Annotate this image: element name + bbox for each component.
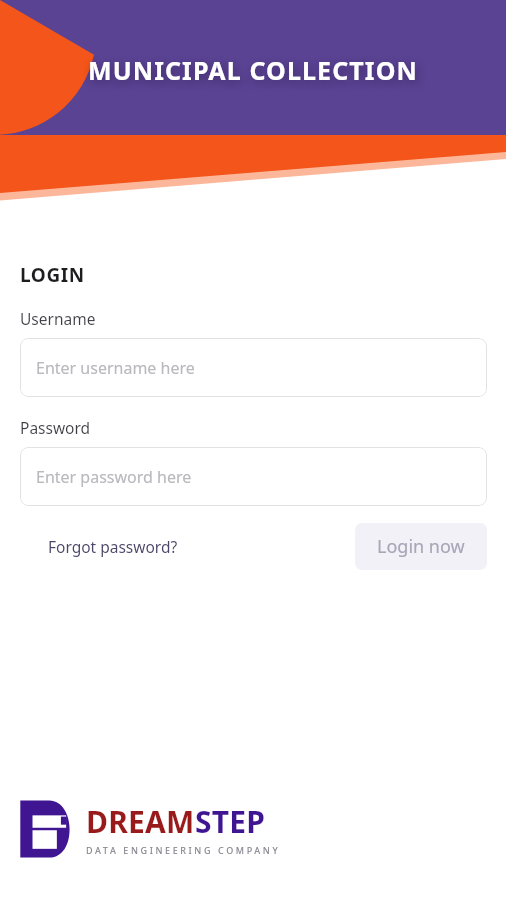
staticText: Enter password here (36, 466, 192, 488)
staticText: Password (20, 417, 91, 438)
button[interactable]: Login now (355, 523, 487, 570)
staticText: DATA ENGINEERING COMPANY (86, 844, 281, 856)
button[interactable]: Enter username here (20, 338, 487, 397)
button[interactable]: Forgot password? (20, 526, 206, 567)
staticText: STEP (195, 801, 266, 842)
staticText: Login now (377, 534, 465, 559)
staticText: LOGIN (20, 262, 85, 288)
staticText: Enter username here (36, 357, 195, 379)
staticText: Username (20, 308, 96, 329)
staticText: DREAM (86, 801, 195, 842)
button[interactable]: Enter password here (20, 447, 487, 506)
staticText: Forgot password? (48, 536, 178, 557)
staticText: MUNICIPAL COLLECTION (88, 53, 418, 87)
